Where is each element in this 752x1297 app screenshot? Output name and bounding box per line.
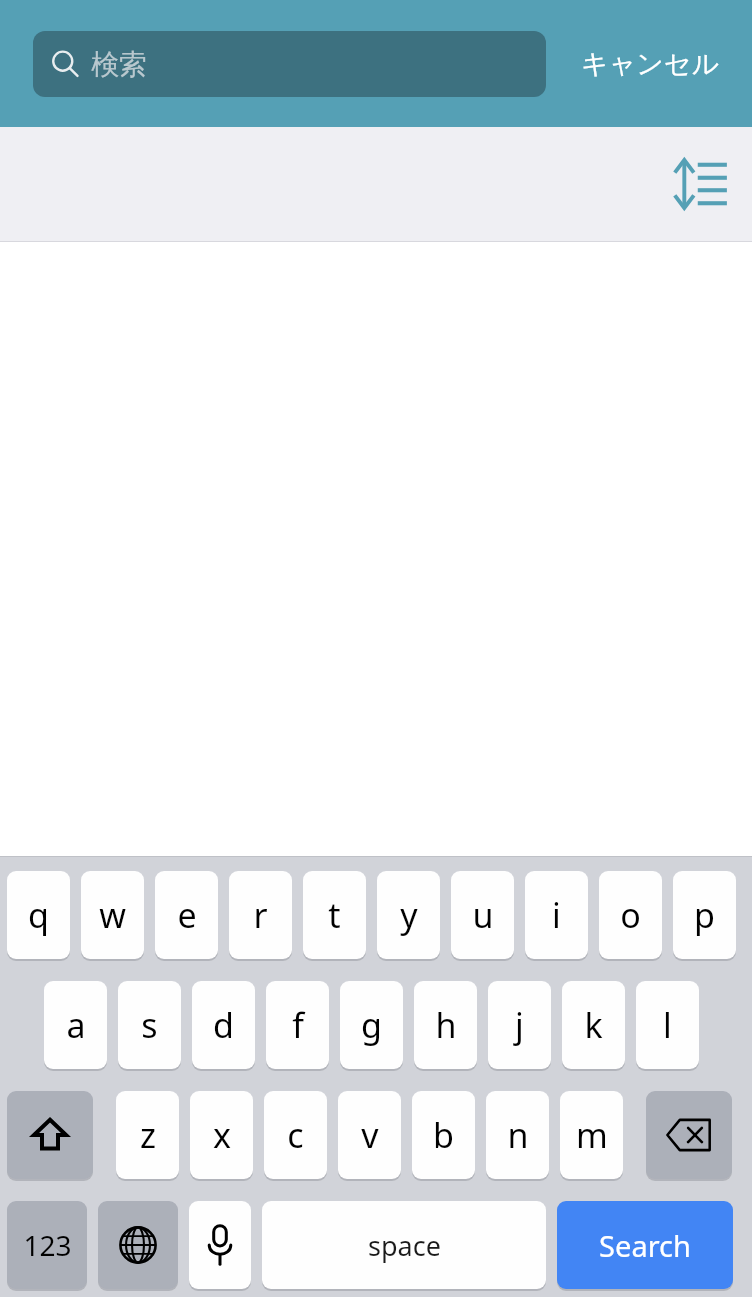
button[interactable]: c [264, 1091, 327, 1179]
button[interactable]: Sort [662, 148, 738, 220]
staticText: u [472, 892, 494, 938]
button[interactable]: w [81, 871, 144, 959]
staticText: p [694, 892, 715, 938]
button[interactable]: Change keyboard [98, 1201, 178, 1289]
button[interactable]: v [338, 1091, 401, 1179]
staticText: r [253, 892, 268, 938]
button[interactable]: Voice input [189, 1201, 251, 1289]
staticText: c [287, 1112, 304, 1158]
button[interactable]: Search [557, 1201, 733, 1289]
button[interactable]: e [155, 871, 218, 959]
button[interactable]: キャンセル [567, 37, 734, 91]
button[interactable]: p [673, 871, 736, 959]
staticText: l [663, 1002, 672, 1048]
staticText: space [368, 1227, 441, 1264]
staticText: 検索 [91, 47, 147, 82]
staticText: z [140, 1112, 156, 1158]
staticText: f [292, 1002, 304, 1048]
button[interactable]: a [44, 981, 107, 1069]
staticText: a [66, 1002, 86, 1048]
staticText: Search [599, 1226, 691, 1265]
staticText: t [328, 892, 341, 938]
button[interactable]: Shift [7, 1091, 93, 1179]
staticText: k [584, 1002, 603, 1048]
staticText: o [620, 892, 641, 938]
button[interactable]: x [190, 1091, 253, 1179]
staticText: i [552, 892, 561, 938]
button[interactable]: y [377, 871, 440, 959]
button[interactable]: z [116, 1091, 179, 1179]
button[interactable]: s [118, 981, 181, 1069]
staticText: x [213, 1112, 231, 1158]
staticText: v [361, 1112, 379, 1158]
button[interactable]: q [7, 871, 70, 959]
button[interactable]: r [229, 871, 292, 959]
button[interactable]: t [303, 871, 366, 959]
button[interactable]: l [636, 981, 699, 1069]
button[interactable]: o [599, 871, 662, 959]
button[interactable]: i [525, 871, 588, 959]
staticText: キャンセル [581, 47, 720, 81]
staticText: q [28, 892, 49, 938]
button[interactable]: Delete [646, 1091, 732, 1179]
button[interactable]: m [560, 1091, 623, 1179]
staticText: d [213, 1002, 234, 1048]
staticText: e [177, 892, 197, 938]
button[interactable]: space [262, 1201, 546, 1289]
button[interactable]: n [486, 1091, 549, 1179]
staticText: 123 [23, 1226, 72, 1264]
button[interactable]: b [412, 1091, 475, 1179]
button[interactable]: f [266, 981, 329, 1069]
staticText: s [141, 1002, 158, 1048]
button[interactable]: k [562, 981, 625, 1069]
button[interactable]: 検索 [33, 31, 546, 97]
staticText: h [435, 1002, 457, 1048]
button[interactable]: h [414, 981, 477, 1069]
staticText: m [576, 1112, 608, 1158]
button[interactable]: u [451, 871, 514, 959]
staticText: b [433, 1112, 454, 1158]
button[interactable]: d [192, 981, 255, 1069]
staticText: g [361, 1002, 382, 1048]
button[interactable]: j [488, 981, 551, 1069]
staticText: y [400, 892, 418, 938]
button[interactable]: g [340, 981, 403, 1069]
staticText: n [507, 1112, 529, 1158]
button[interactable]: 123 [7, 1201, 87, 1289]
staticText: j [515, 1002, 524, 1048]
staticText: w [99, 892, 126, 938]
